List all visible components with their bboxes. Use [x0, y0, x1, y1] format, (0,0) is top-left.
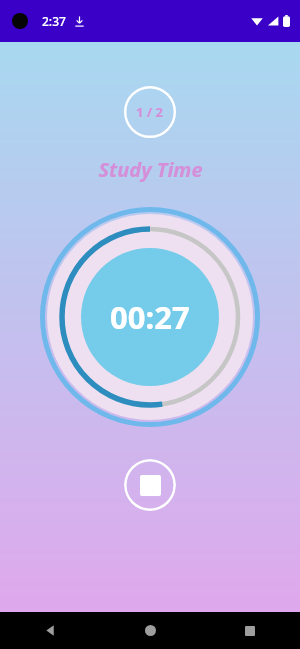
staticText: Study Time	[98, 156, 203, 183]
button[interactable]: Stop timer	[124, 459, 176, 511]
button[interactable]: Back	[27, 612, 73, 649]
button[interactable]: 1 / 2	[124, 86, 176, 138]
button[interactable]: Recent apps	[227, 612, 273, 649]
button[interactable]: Home	[127, 612, 173, 649]
staticText: 2:37	[42, 13, 66, 29]
staticText: 1 / 2	[136, 103, 164, 121]
staticText: 00:27	[110, 296, 190, 338]
